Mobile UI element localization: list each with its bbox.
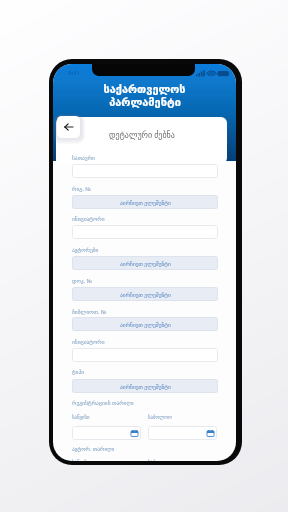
button[interactable]: აირჩიეთ ელემენტი	[72, 379, 218, 393]
staticText: 9:41	[68, 69, 80, 77]
staticText: ინიციატორი	[72, 339, 105, 345]
button[interactable]: აირჩიეთ ელემენტი	[72, 317, 218, 331]
staticText: დოკ. №	[72, 277, 93, 284]
staticText: ავტორები	[72, 247, 99, 253]
staticText: ბიბლიოთ. №	[72, 308, 107, 315]
button[interactable]	[72, 225, 218, 239]
button[interactable]	[72, 164, 218, 178]
staticText: საწყისი	[72, 460, 90, 461]
staticText: საბოლოო	[148, 415, 172, 421]
staticText: რიგ. №	[72, 185, 91, 192]
button[interactable]: Back	[57, 116, 80, 138]
button[interactable]: აირჩიეთ ელემენტი	[72, 195, 218, 209]
staticText: ინიციატორი	[72, 216, 105, 222]
button[interactable]	[72, 348, 218, 362]
staticText: საბოლოო	[148, 460, 172, 461]
button[interactable]	[148, 426, 217, 440]
staticText: რეგისტრაციის თარიღი	[72, 399, 134, 406]
staticText: დეტალური ძებნა	[109, 129, 175, 140]
button[interactable]	[72, 426, 141, 440]
staticText: ტიპი	[72, 369, 85, 375]
staticText: აირჩიეთ ელემენტი	[120, 260, 171, 267]
staticText: აირჩიეთ ელემენტი	[120, 199, 171, 206]
staticText: საქართველოს	[103, 83, 186, 96]
staticText: აირჩიეთ ელემენტი	[120, 291, 171, 298]
staticText: ავტორ. თარიღი	[72, 445, 115, 452]
staticText: სათაური	[72, 155, 95, 161]
button[interactable]: აირჩიეთ ელემენტი	[72, 287, 218, 301]
staticText: აირჩიეთ ელემენტი	[120, 321, 171, 328]
staticText: აირჩიეთ ელემენტი	[120, 383, 171, 390]
button[interactable]: აირჩიეთ ელემენტი	[72, 256, 218, 270]
staticText: პარლამენტი	[109, 96, 181, 109]
staticText: საწყისი	[72, 415, 90, 421]
